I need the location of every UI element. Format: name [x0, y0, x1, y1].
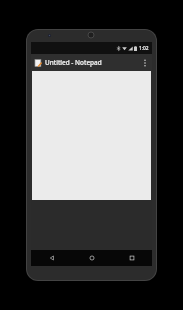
- staticText: 1:02: [139, 45, 149, 52]
- button[interactable]: Recent apps: [112, 250, 152, 266]
- button[interactable]: Home: [72, 250, 112, 266]
- staticText: Untitled - Notepad: [45, 58, 139, 67]
- button[interactable]: Back: [31, 250, 72, 266]
- button[interactable]: More options: [139, 57, 150, 68]
